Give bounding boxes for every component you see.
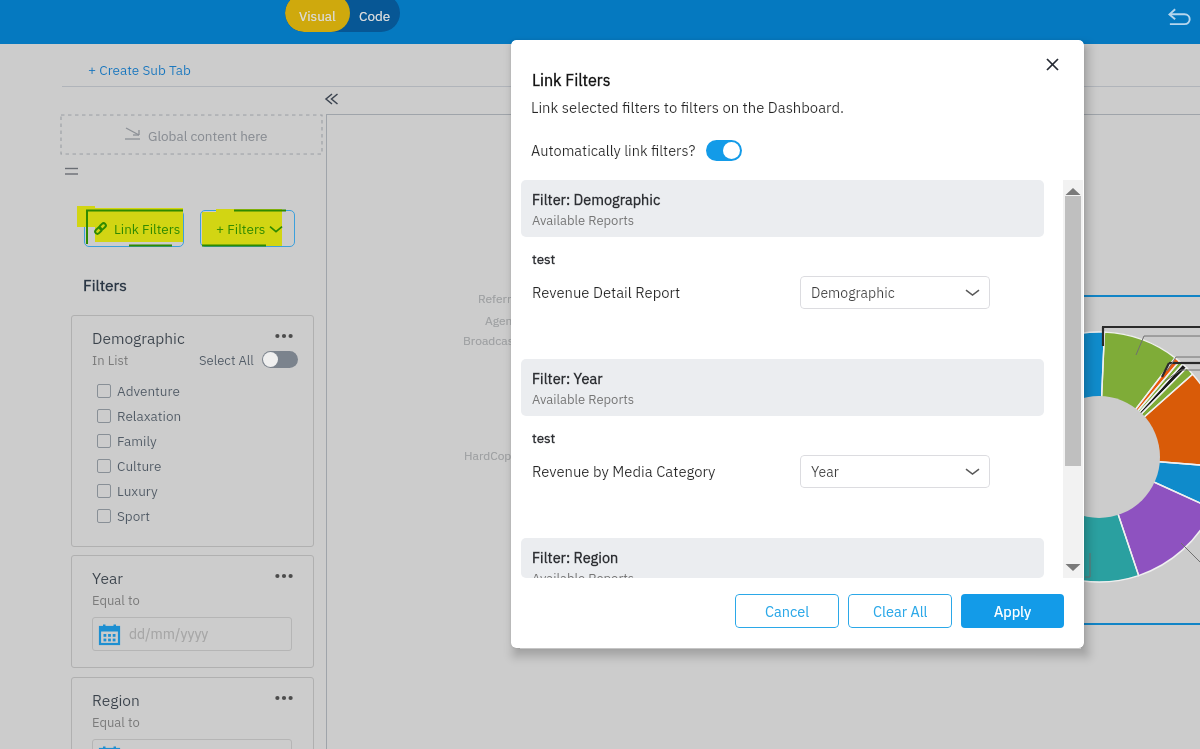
button[interactable]: Collapse panel	[324, 91, 342, 107]
button[interactable]: Cancel	[735, 594, 839, 628]
staticText: test	[532, 250, 556, 268]
button[interactable]: More options	[269, 566, 299, 586]
staticText: Link Filters	[532, 70, 611, 91]
staticText: + Create Sub Tab	[88, 61, 191, 79]
staticText: HardCopy	[464, 448, 518, 464]
staticText: + Filters	[216, 220, 266, 237]
button[interactable]: Visual	[285, 0, 350, 32]
staticText: Demographic	[811, 284, 895, 302]
button[interactable]: Clear All	[848, 594, 952, 628]
button[interactable]: Luxury	[97, 478, 257, 503]
staticText: Available Reports	[532, 570, 635, 578]
staticText: Culture	[117, 457, 162, 475]
button[interactable]: Sport	[97, 503, 257, 528]
button[interactable]: Apply	[961, 594, 1064, 628]
staticText: Filter: Year	[532, 369, 603, 388]
staticText: Family	[117, 432, 157, 450]
staticText: Automatically link filters?	[531, 141, 696, 160]
button[interactable]: Code	[350, 0, 400, 32]
staticText: Filter: Region	[532, 548, 619, 567]
button[interactable]: + Create Sub Tab	[88, 61, 191, 79]
staticText: Clear All	[873, 602, 928, 621]
staticText: Available Reports	[532, 391, 635, 408]
button[interactable]: Culture	[97, 453, 257, 478]
button[interactable]: Family	[97, 428, 257, 453]
staticText: Select All	[199, 352, 254, 369]
staticText: Region	[92, 690, 140, 710]
staticText: Link Filters	[114, 220, 181, 237]
staticText: Available Reports	[532, 212, 635, 229]
staticText: dd/mm/yyyy	[129, 625, 209, 643]
button[interactable]: Demographic	[800, 276, 990, 309]
button[interactable]: Relaxation	[97, 403, 257, 428]
staticText: Agent	[485, 313, 517, 329]
staticText: Adventure	[117, 382, 180, 400]
staticText: Demographic	[92, 328, 185, 348]
button[interactable]: More options	[269, 688, 299, 708]
staticText: Equal to	[92, 714, 140, 731]
button[interactable]: Undo	[1166, 4, 1194, 32]
button[interactable]: dd/mm/yyyy	[92, 617, 292, 651]
button[interactable]: dd/mm/yyyy	[92, 739, 292, 749]
staticText: Revenue Detail Report	[532, 283, 681, 302]
staticText: Apply	[994, 602, 1032, 621]
staticText: Relaxation	[117, 407, 182, 425]
staticText: Luxury	[117, 482, 158, 500]
button[interactable]: Filter: Region	[521, 538, 1044, 578]
button[interactable]: More options	[269, 326, 299, 346]
staticText: Revenue by Media Category	[532, 462, 716, 481]
staticText: Year	[811, 463, 839, 481]
staticText: Global content here	[148, 127, 268, 145]
button[interactable]: Adventure	[97, 378, 257, 403]
staticText: Broadcast	[463, 333, 518, 349]
staticText: Equal to	[92, 592, 140, 609]
staticText: In List	[92, 352, 129, 369]
button[interactable]: Automatically link filters toggle	[706, 140, 742, 161]
staticText: Code	[359, 7, 391, 25]
staticText: Visual	[299, 7, 336, 25]
button[interactable]: Select All toggle	[262, 351, 298, 368]
button[interactable]	[84, 210, 184, 247]
button[interactable]: Filter: Year	[521, 359, 1044, 416]
button[interactable]: Filter: Demographic	[521, 180, 1044, 237]
staticText: Cancel	[765, 602, 810, 621]
button[interactable]	[200, 210, 295, 247]
staticText: Filter: Demographic	[532, 190, 661, 209]
staticText: Year	[92, 568, 123, 588]
staticText: Link selected filters to filters on the …	[531, 98, 844, 117]
button[interactable]: Close	[1034, 46, 1070, 82]
button[interactable]: Year	[800, 455, 990, 488]
staticText: test	[532, 429, 556, 447]
staticText: Referral	[478, 291, 521, 307]
staticText: Filters	[83, 275, 127, 295]
staticText: Sport	[117, 507, 150, 525]
button[interactable]: Global content here	[61, 115, 322, 154]
